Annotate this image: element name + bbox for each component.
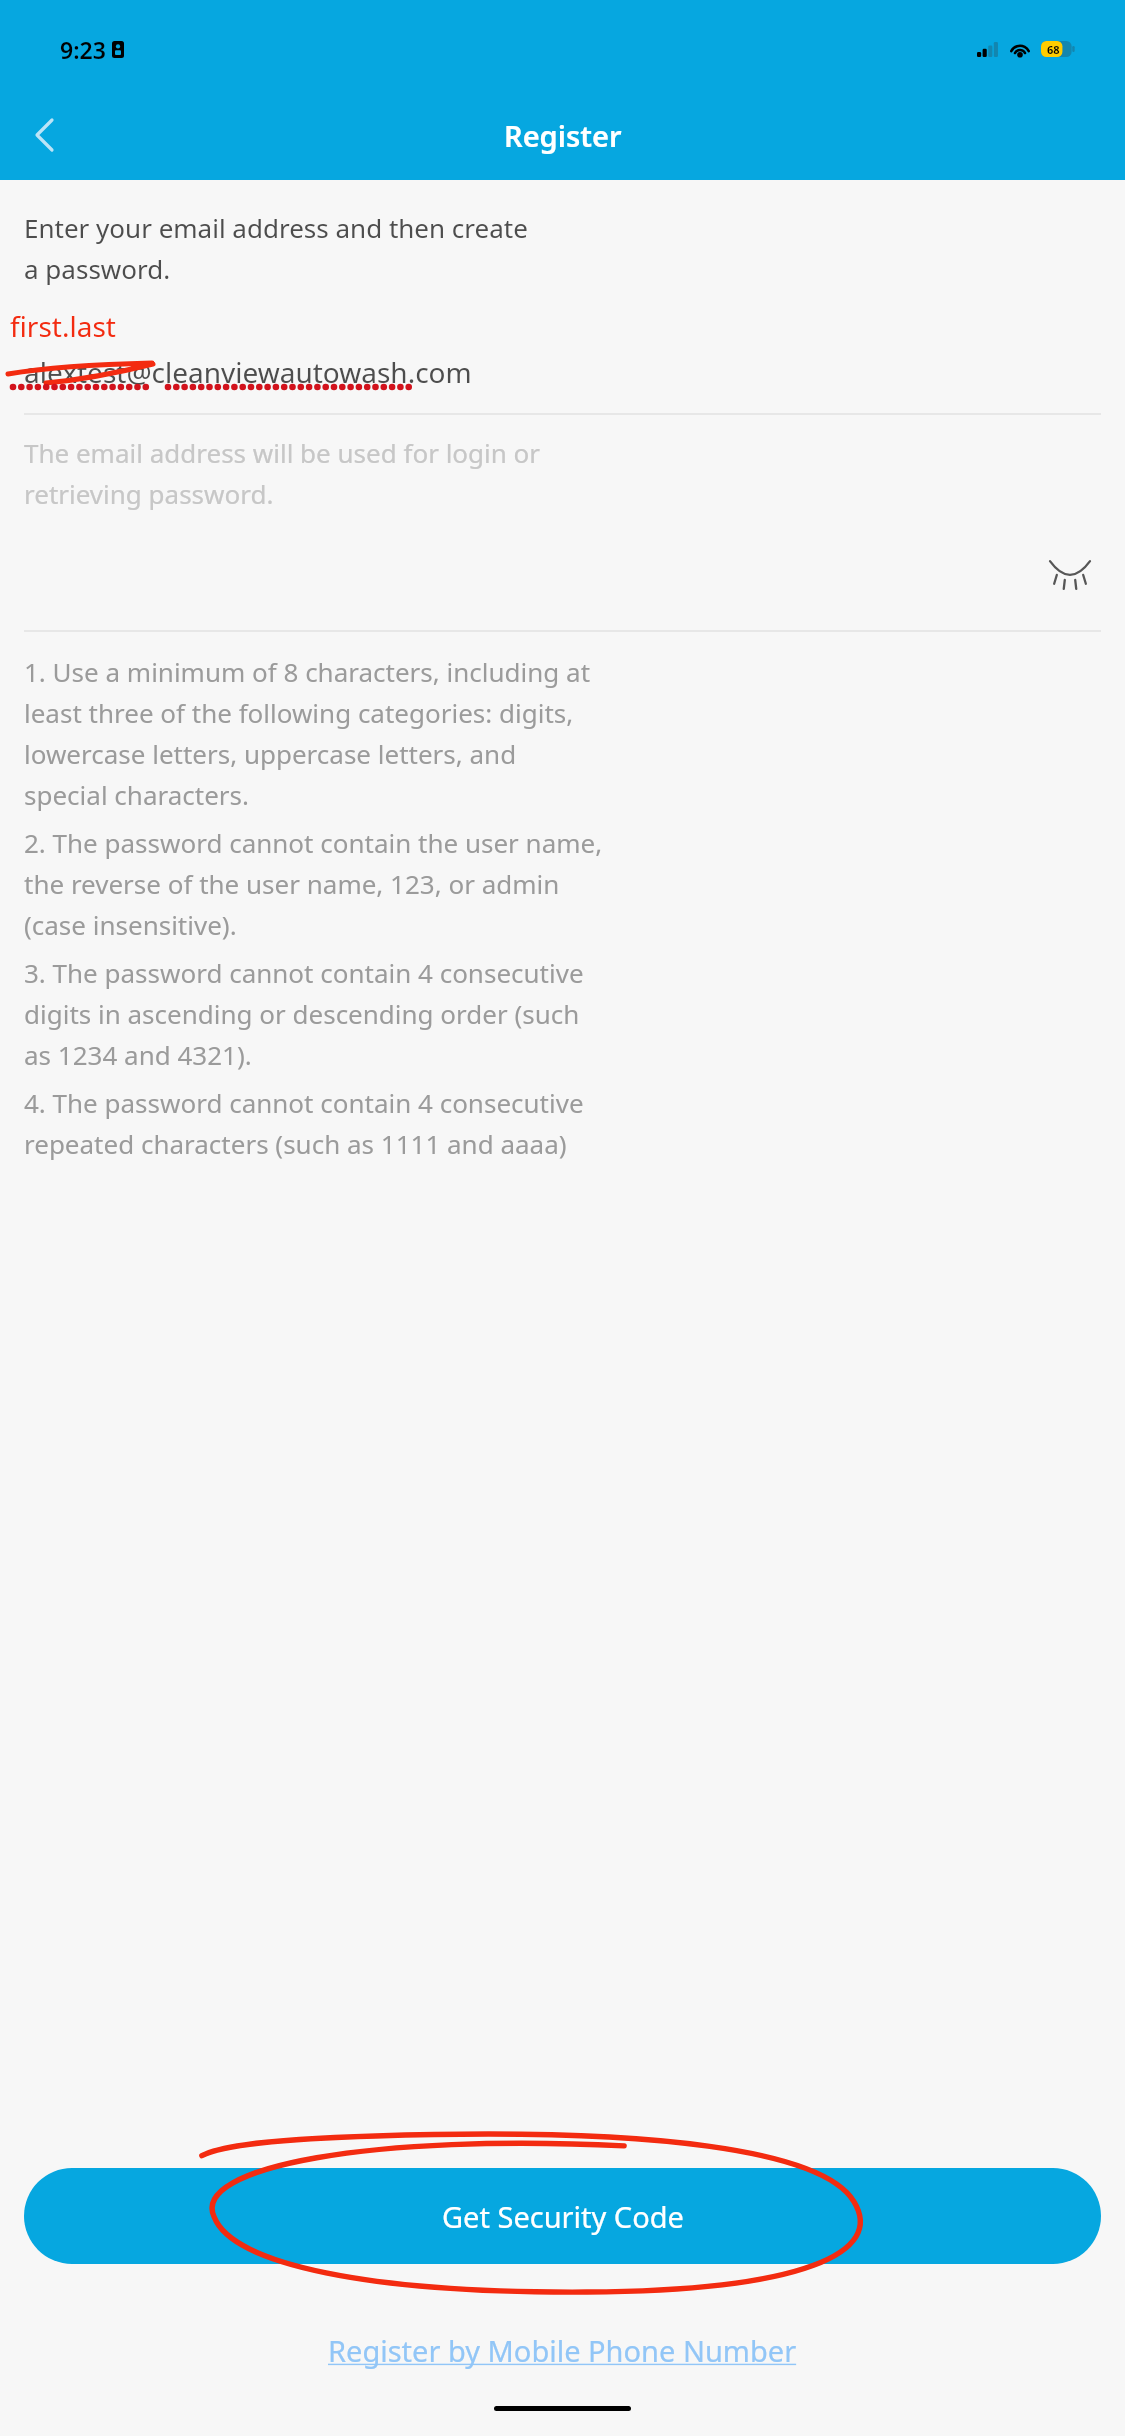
button[interactable]: Show password [1037,538,1103,604]
button[interactable]: Get Security Code [24,2168,1101,2264]
staticText: 2. The password cannot contain the user … [24,825,603,943]
staticText: Get Security Code [442,2197,684,2236]
staticText: The email address will be used for login… [24,435,541,512]
staticText: alextest@cleanviewautowash.com [24,353,472,391]
staticText: 4. The password cannot contain 4 consecu… [24,1085,584,1162]
staticText: 1. Use a minimum of 8 characters, includ… [24,654,591,813]
staticText: Register [504,116,622,155]
staticText: 9:23 [60,34,106,65]
staticText: 68 [1047,42,1060,57]
button[interactable]: Back [8,99,80,171]
staticText: Enter your email address and then create… [24,210,528,287]
staticText: 3. The password cannot contain 4 consecu… [24,955,584,1073]
button[interactable]: Register by Mobile Phone Number [316,2327,809,2374]
staticText: first.last [10,307,116,345]
